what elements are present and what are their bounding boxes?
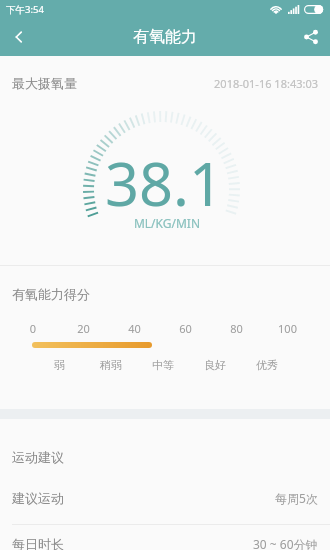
staticText: 38.1: [0, 142, 329, 223]
staticText: 40: [109, 321, 160, 336]
staticText: 良好: [189, 358, 241, 372]
staticText: 优秀: [241, 358, 293, 372]
staticText: 最大摄氧量: [12, 75, 77, 91]
staticText: 运动建议: [12, 449, 64, 465]
staticText: 2018-01-16 18:43:03: [200, 76, 318, 91]
staticText: 有氧能力: [133, 27, 197, 47]
staticText: 每日时长: [12, 536, 64, 550]
staticText: ML/KG/MIN: [2, 215, 330, 231]
button[interactable]: 每日时长: [0, 530, 330, 550]
staticText: 下午3:54: [6, 3, 44, 16]
staticText: 80: [211, 321, 262, 336]
button[interactable]: 建议运动: [0, 484, 330, 512]
button[interactable]: Share: [292, 18, 330, 56]
staticText: 建议运动: [12, 490, 64, 506]
staticText: 100: [262, 321, 313, 336]
button[interactable]: Back: [0, 18, 38, 56]
staticText: 弱: [34, 358, 85, 372]
staticText: 60: [160, 321, 211, 336]
staticText: 30 ~ 60分钟: [253, 536, 318, 550]
staticText: 20: [58, 321, 109, 336]
staticText: 中等: [137, 358, 189, 372]
staticText: 稍弱: [85, 358, 137, 372]
staticText: 0: [8, 321, 58, 336]
staticText: 每周5次: [275, 490, 318, 506]
staticText: 有氧能力得分: [12, 286, 90, 302]
